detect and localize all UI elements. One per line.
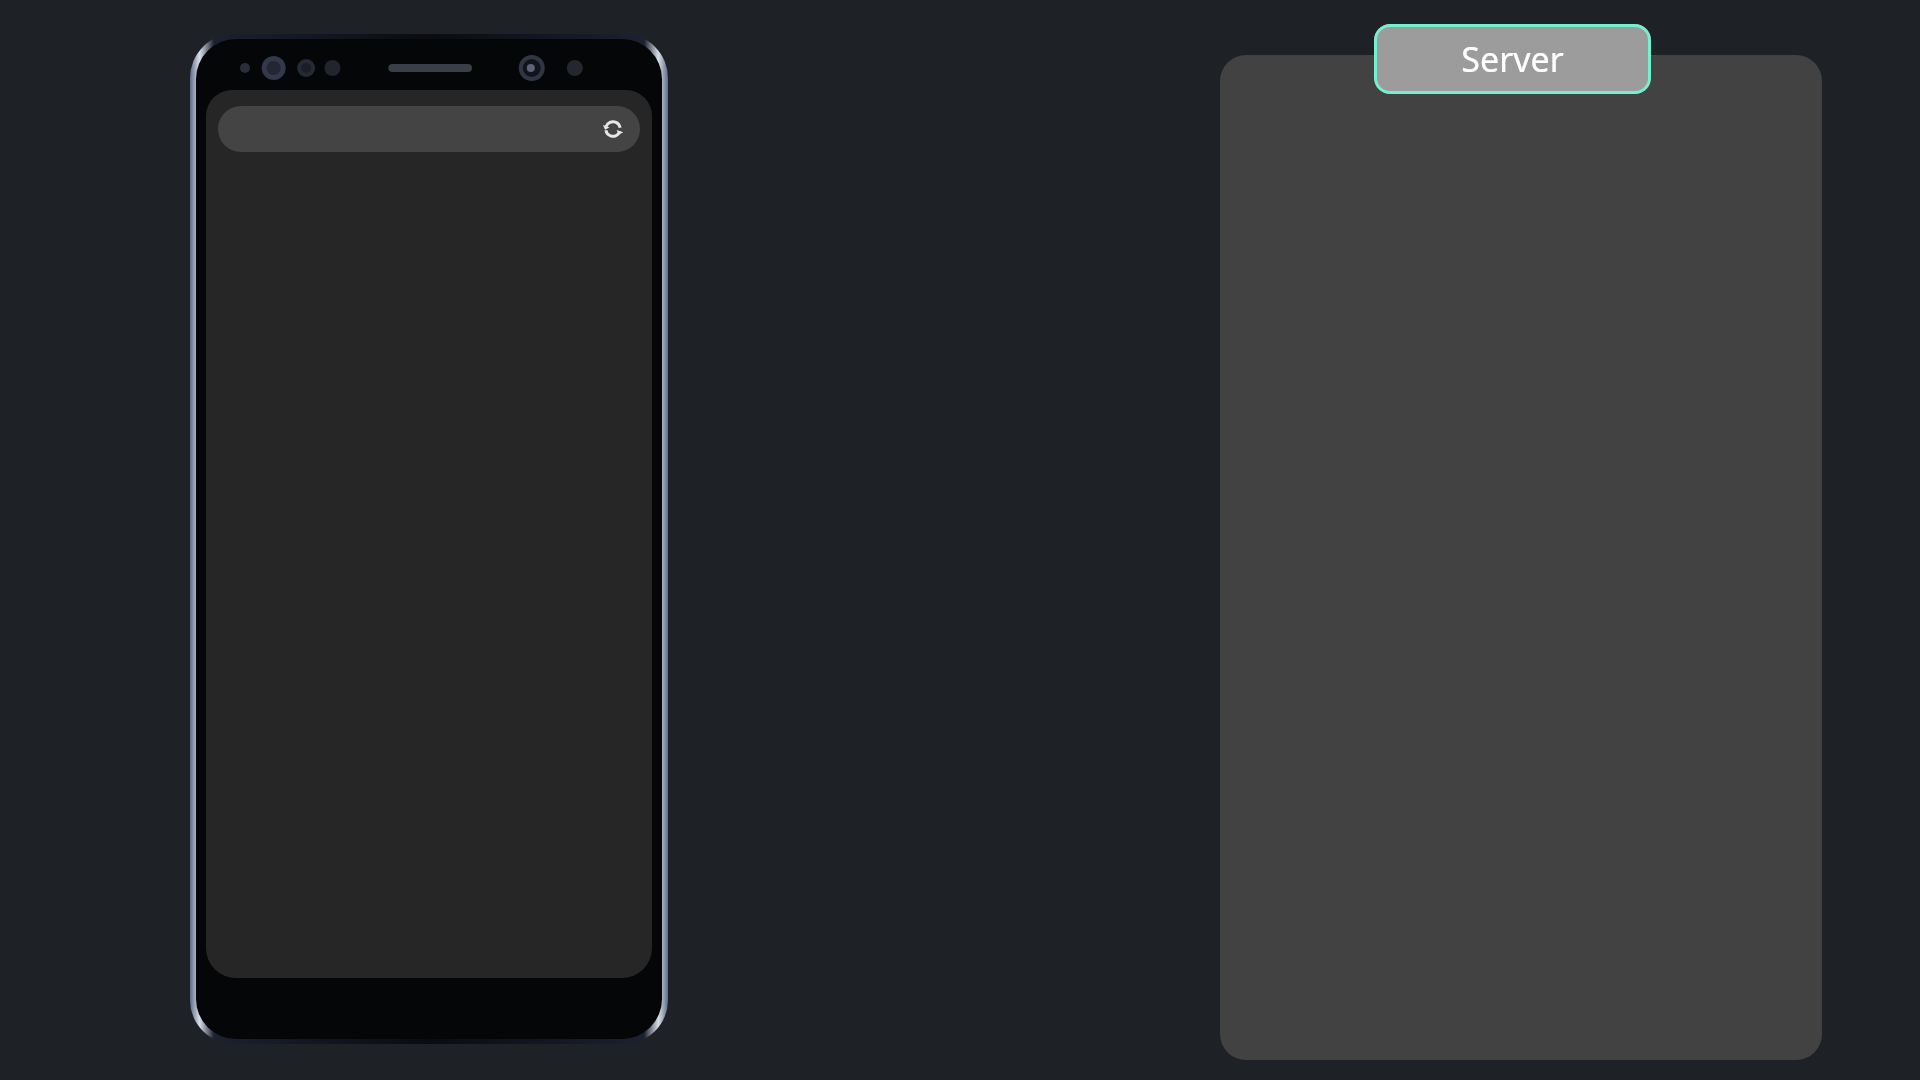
- button[interactable]: Refresh: [218, 106, 640, 152]
- button[interactable]: [1220, 55, 1822, 1060]
- button[interactable]: Refresh: [596, 112, 630, 146]
- button[interactable]: Server: [1374, 24, 1651, 94]
- staticText: Server: [1461, 36, 1564, 82]
